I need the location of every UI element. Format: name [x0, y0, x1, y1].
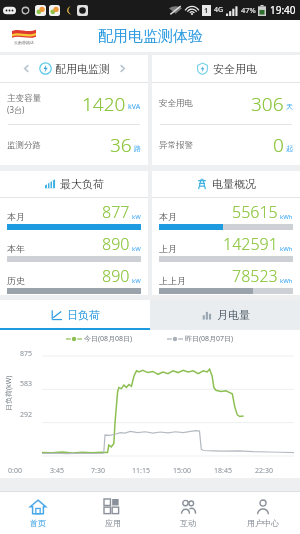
button[interactable]: 监测分路 [7, 125, 141, 165]
button[interactable]: 本年 [7, 233, 141, 265]
staticText: 本月 [159, 211, 177, 222]
button[interactable]: Previous [0, 55, 148, 82]
staticText: 天 [286, 102, 293, 111]
staticText: 55615 [232, 201, 278, 223]
staticText: 互动 [180, 518, 196, 528]
staticText: 11:15 [132, 466, 173, 476]
staticText: 起 [286, 144, 293, 153]
staticText: 日负荷(kW) [4, 375, 14, 411]
staticText: 云南曲靖达 [14, 40, 34, 45]
button[interactable]: 主变容量 [7, 83, 141, 124]
other: Previous [22, 64, 31, 73]
button[interactable]: 安全用电 [159, 83, 293, 124]
button[interactable]: 本月 [7, 201, 141, 233]
staticText: 292 [20, 410, 33, 420]
staticText: 0 [273, 132, 284, 158]
staticText: 3:45 [50, 466, 91, 476]
staticText: 877 [102, 201, 130, 223]
staticText: 上上月 [159, 275, 186, 286]
button[interactable]: 最大负荷 [0, 171, 148, 197]
button[interactable]: 日负荷 [0, 300, 150, 330]
button[interactable]: 上上月 [159, 265, 293, 295]
staticText: 应用 [105, 518, 121, 528]
staticText: 监测分路 [7, 140, 41, 151]
staticText: 583 [20, 379, 33, 389]
other: Next [118, 64, 127, 73]
staticText: kW [132, 277, 141, 285]
staticText: 上月 [159, 243, 177, 254]
button[interactable]: 首页 [0, 492, 75, 534]
staticText: 本年 [7, 243, 25, 254]
staticText: 配用电监测 [55, 62, 110, 76]
staticText: 主变容量 [7, 93, 41, 104]
staticText: 安全用电 [213, 62, 257, 76]
staticText: kVA [128, 102, 141, 112]
staticText: 0:00 [8, 466, 50, 476]
staticText: 875 [20, 349, 33, 359]
button[interactable]: 应用 [75, 492, 150, 534]
staticText: 1 [204, 6, 209, 16]
staticText: 路 [134, 144, 141, 153]
staticText: 用户中心 [247, 518, 279, 528]
staticText: 配用电监测体验 [98, 27, 203, 46]
staticText: kWh [280, 213, 293, 221]
button[interactable]: 月电量 [150, 300, 300, 330]
staticText: 36 [110, 132, 132, 158]
button[interactable]: 本月 [159, 201, 293, 233]
staticText: 47% [241, 5, 256, 15]
staticText: 15:00 [173, 466, 214, 476]
staticText: (3台) [7, 104, 25, 115]
button[interactable]: 电量概况 [152, 171, 300, 197]
staticText: 日负荷 [67, 308, 100, 322]
staticText: 306 [251, 91, 284, 117]
staticText: kW [132, 213, 141, 221]
staticText: 4G [214, 5, 224, 15]
staticText: 19:40 [270, 3, 296, 17]
button[interactable]: 安全用电 [152, 55, 300, 82]
staticText: 78523 [232, 265, 278, 287]
staticText: 电量概况 [212, 177, 256, 191]
staticText: 历史 [7, 275, 25, 286]
staticText: 本月 [7, 211, 25, 222]
button[interactable]: 历史 [7, 265, 141, 295]
staticText: kWh [280, 277, 293, 285]
staticText: 最大负荷 [60, 177, 104, 191]
staticText: 安全用电 [159, 98, 193, 109]
staticText: 今日(08月08日) [84, 334, 133, 344]
staticText: 异常报警 [159, 140, 193, 151]
staticText: 22:30 [255, 466, 296, 476]
staticText: 890 [102, 265, 130, 287]
button[interactable]: 互动 [150, 492, 225, 534]
staticText: 昨日(08月07日) [185, 334, 234, 344]
staticText: kW [132, 245, 141, 253]
button[interactable]: 用户中心 [225, 492, 300, 534]
staticText: 1420 [82, 91, 126, 117]
staticText: 142591 [223, 233, 278, 255]
staticText: 7:30 [91, 466, 132, 476]
staticText: 18:45 [214, 466, 255, 476]
staticText: 月电量 [217, 308, 250, 322]
staticText: 首页 [30, 518, 46, 528]
button[interactable]: 上月 [159, 233, 293, 265]
button[interactable]: 异常报警 [159, 125, 293, 165]
staticText: 890 [102, 233, 130, 255]
staticText: kWh [280, 245, 293, 253]
